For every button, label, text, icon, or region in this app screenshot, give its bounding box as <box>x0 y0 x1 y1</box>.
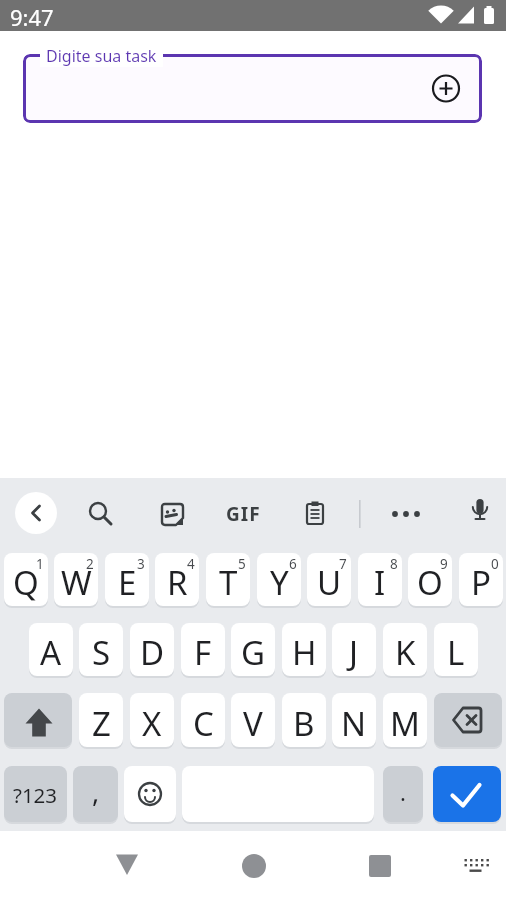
button[interactable]: T <box>206 553 250 606</box>
staticText: L <box>447 630 465 675</box>
button[interactable]: C <box>181 693 225 747</box>
button[interactable]: S <box>79 623 123 676</box>
staticText: 5 <box>238 555 246 573</box>
staticText: . <box>400 777 406 807</box>
staticText: D <box>140 630 165 675</box>
button[interactable]: GIF <box>225 496 265 530</box>
button[interactable] <box>433 766 501 822</box>
button[interactable] <box>106 845 148 887</box>
button[interactable]: H <box>282 623 326 676</box>
staticText: T <box>219 560 238 605</box>
button[interactable]: A <box>29 623 73 676</box>
button[interactable]: K <box>383 623 427 676</box>
staticText: Digite sua task <box>46 45 157 67</box>
button[interactable]: W <box>54 553 98 606</box>
button[interactable]: J <box>332 623 376 676</box>
staticText: 7 <box>339 555 347 573</box>
button[interactable] <box>79 493 119 533</box>
button[interactable]: L <box>434 623 478 676</box>
staticText: B <box>293 701 315 746</box>
staticText: Y <box>270 560 289 605</box>
button[interactable] <box>359 845 401 887</box>
button[interactable]: X <box>130 693 174 747</box>
button[interactable] <box>152 493 192 533</box>
button[interactable]: M <box>383 693 427 747</box>
staticText: 1 <box>36 555 44 573</box>
staticText: V <box>243 701 263 746</box>
button[interactable]: N <box>332 693 376 747</box>
staticText: Q <box>13 560 39 605</box>
staticText: A <box>40 630 62 675</box>
staticText: 9 <box>440 555 448 573</box>
staticText: 4 <box>187 555 195 573</box>
button[interactable]: Q <box>4 553 48 606</box>
button[interactable]: ?123 <box>4 766 67 822</box>
staticText: R <box>167 560 188 605</box>
staticText: 8 <box>390 555 398 573</box>
staticText: M <box>390 701 420 746</box>
button[interactable] <box>458 851 490 879</box>
button[interactable] <box>23 54 482 123</box>
staticText: J <box>349 630 359 675</box>
button[interactable]: F <box>181 623 225 676</box>
button[interactable]: I <box>358 553 402 606</box>
button[interactable]: R <box>155 553 199 606</box>
button[interactable] <box>296 493 336 533</box>
staticText: N <box>341 701 367 746</box>
button[interactable]: U <box>307 553 351 606</box>
button[interactable] <box>386 493 426 533</box>
staticText: K <box>395 630 416 675</box>
staticText: E <box>118 560 137 605</box>
staticText: ?123 <box>13 781 58 809</box>
button[interactable]: , <box>73 766 118 822</box>
staticText: G <box>241 630 266 675</box>
staticText: , <box>92 773 100 810</box>
button[interactable]: . <box>383 766 423 822</box>
staticText: W <box>61 560 92 605</box>
staticText: GIF <box>226 501 261 527</box>
button[interactable] <box>4 693 72 747</box>
button[interactable]: B <box>282 693 326 747</box>
staticText: 3 <box>137 555 145 573</box>
staticText: U <box>317 560 342 605</box>
staticText: 0 <box>491 555 499 573</box>
staticText: S <box>92 630 111 675</box>
staticText: F <box>194 630 212 675</box>
button[interactable]: E <box>105 553 149 606</box>
button[interactable]: D <box>130 623 174 676</box>
button[interactable] <box>233 845 275 887</box>
staticText: X <box>142 701 162 746</box>
button[interactable] <box>460 492 500 532</box>
button[interactable]: Z <box>79 693 123 747</box>
staticText: O <box>417 560 443 605</box>
button[interactable] <box>426 68 466 108</box>
button[interactable]: G <box>231 623 275 676</box>
button[interactable]: Y <box>257 553 301 606</box>
staticText: C <box>193 701 214 746</box>
staticText: 9:47 <box>10 2 54 32</box>
staticText: H <box>292 630 317 675</box>
staticText: P <box>471 560 491 605</box>
button[interactable] <box>124 766 176 822</box>
staticText: 2 <box>86 555 94 573</box>
button[interactable] <box>434 693 502 747</box>
button[interactable]: P <box>459 553 503 606</box>
staticText: Z <box>92 701 111 746</box>
staticText: I <box>374 560 386 605</box>
button[interactable]: O <box>408 553 452 606</box>
button[interactable] <box>15 492 57 534</box>
button[interactable]: V <box>231 693 275 747</box>
staticText: 6 <box>289 555 297 573</box>
